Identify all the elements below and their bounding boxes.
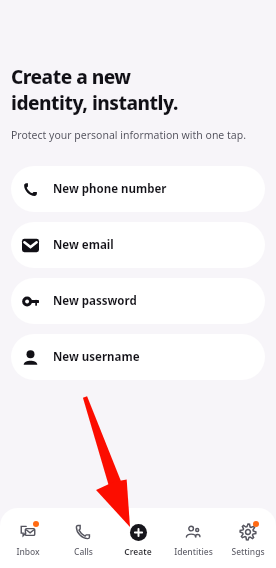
staticText: Create bbox=[124, 546, 152, 558]
staticText: Identities bbox=[174, 546, 213, 558]
button[interactable]: New email bbox=[11, 222, 265, 268]
button[interactable]: New username bbox=[11, 334, 265, 380]
staticText: New email bbox=[53, 237, 114, 253]
staticText: Settings bbox=[231, 546, 265, 558]
button[interactable]: New phone number bbox=[11, 166, 265, 212]
button[interactable]: Calls bbox=[57, 521, 109, 558]
staticText: Protect your personal information with o… bbox=[11, 128, 246, 142]
staticText: New username bbox=[53, 349, 140, 365]
button[interactable]: New password bbox=[11, 278, 265, 324]
staticText: New phone number bbox=[53, 181, 167, 197]
button[interactable]: Create bbox=[112, 521, 164, 558]
staticText: Create a new identity, instantly. bbox=[11, 64, 178, 115]
button[interactable]: Inbox bbox=[2, 521, 54, 558]
staticText: Calls bbox=[74, 546, 93, 558]
button[interactable]: Identities bbox=[167, 521, 219, 558]
button[interactable]: Settings bbox=[222, 521, 274, 558]
staticText: Inbox bbox=[16, 546, 40, 558]
staticText: New password bbox=[53, 293, 137, 309]
